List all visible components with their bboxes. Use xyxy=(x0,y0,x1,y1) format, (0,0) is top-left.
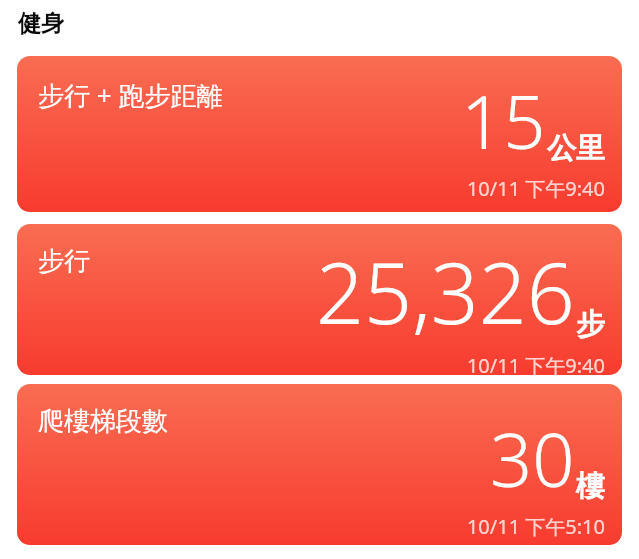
staticText: 10/11 下午5:10 xyxy=(466,513,605,540)
staticText: 步行 + 跑步距離 xyxy=(38,77,223,113)
button[interactable]: 步行 + 跑步距離 xyxy=(17,56,622,212)
staticText: 步行 xyxy=(38,245,90,278)
button[interactable]: 爬樓梯段數 xyxy=(17,384,622,545)
staticText: 30 xyxy=(490,408,575,509)
staticText: 10/11 下午9:40 xyxy=(466,175,605,202)
staticText: 15 xyxy=(461,70,546,171)
staticText: 樓 xyxy=(576,468,605,505)
staticText: 健身 xyxy=(18,9,64,38)
staticText: 爬樓梯段數 xyxy=(38,405,168,438)
staticText: 10/11 下午9:40 xyxy=(466,352,605,375)
staticText: 25,326 xyxy=(316,234,575,348)
button[interactable]: 步行 xyxy=(17,224,622,375)
staticText: 步 xyxy=(576,306,605,343)
staticText: 公里 xyxy=(547,130,605,167)
